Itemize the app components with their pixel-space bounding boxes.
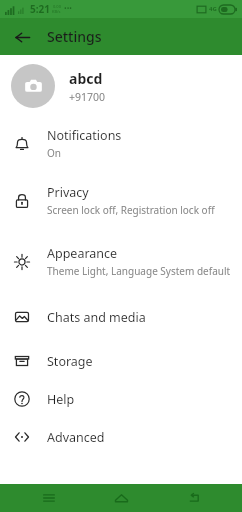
button[interactable]: Advanced <box>0 418 242 456</box>
button[interactable]: Storage <box>0 342 242 380</box>
staticText: Appearance <box>47 245 118 262</box>
button[interactable]: abcd <box>0 55 242 117</box>
staticText: Settings <box>47 27 102 46</box>
button[interactable]: Appearance <box>0 231 242 292</box>
staticText: Chats and media <box>47 309 146 326</box>
staticText: Storage <box>47 353 93 370</box>
staticText: 4G <box>209 5 217 13</box>
button[interactable]: Home <box>97 484 145 512</box>
button[interactable]: Back <box>170 484 218 512</box>
staticText: Help <box>47 391 75 408</box>
staticText: Notifications <box>47 127 122 144</box>
staticText: +91700 <box>69 90 106 104</box>
staticText: Screen lock off, Registration lock off <box>47 203 215 217</box>
staticText: 0.00 <box>53 4 61 9</box>
staticText: ••• <box>64 4 72 14</box>
staticText: Privacy <box>47 184 89 201</box>
staticText: abcd <box>69 69 103 88</box>
staticText: Theme Light, Language System default <box>47 264 231 278</box>
button[interactable]: Privacy <box>0 170 242 231</box>
button[interactable]: Recent apps <box>25 484 73 512</box>
button[interactable]: Chats and media <box>0 292 242 342</box>
staticText: 5:21 <box>30 2 50 16</box>
staticText: On <box>47 146 61 160</box>
staticText: KB/s <box>52 9 61 14</box>
button[interactable]: Help <box>0 380 242 418</box>
button[interactable]: Notifications <box>0 117 242 170</box>
staticText: Advanced <box>47 429 105 446</box>
button[interactable]: Back <box>6 21 38 53</box>
